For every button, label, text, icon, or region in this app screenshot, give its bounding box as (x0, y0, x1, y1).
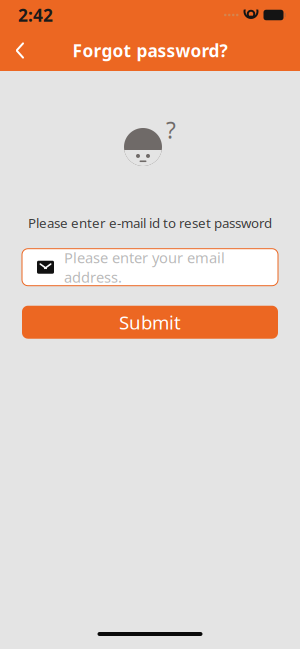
button[interactable]: Back (0, 30, 40, 71)
button[interactable]: Submit (22, 306, 278, 339)
staticText: Please enter e-mail id to reset password (28, 214, 272, 232)
staticText: Please enter your email address. (64, 248, 225, 287)
staticText: Submit (119, 310, 181, 335)
staticText: ? (166, 115, 176, 145)
staticText: Forgot password? (72, 39, 227, 62)
staticText: 2:42 (18, 3, 53, 26)
